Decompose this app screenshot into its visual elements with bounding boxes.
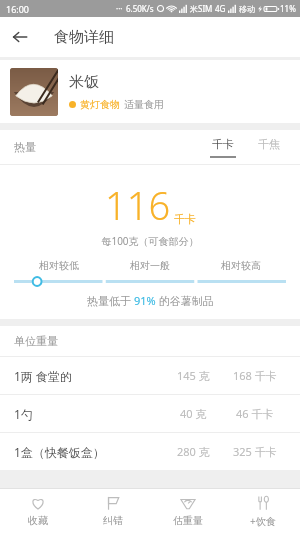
staticText: 食物详细: [54, 28, 114, 47]
staticText: 1勺: [14, 406, 162, 422]
staticText: 热量: [14, 140, 36, 154]
button[interactable]: 收藏: [0, 489, 75, 533]
button[interactable]: 1盒（快餐饭盒）: [0, 433, 300, 470]
staticText: 千卡: [212, 137, 234, 151]
staticText: 4G: [215, 3, 226, 14]
button[interactable]: 估重量: [150, 489, 225, 533]
button[interactable]: 千卡: [206, 137, 240, 158]
staticText: 单位重量: [14, 334, 58, 348]
staticText: 6.50K/s: [126, 3, 154, 14]
staticText: 相对一般: [130, 259, 170, 272]
button[interactable]: +饮食: [225, 489, 300, 533]
staticText: 相对较低: [39, 259, 79, 272]
button[interactable]: 千焦: [252, 137, 286, 158]
staticText: 米饭: [69, 73, 99, 92]
staticText: 91%: [134, 293, 156, 308]
button[interactable]: 返回: [8, 25, 32, 49]
staticText: 纠错: [103, 514, 123, 527]
button[interactable]: 1勺: [0, 395, 300, 432]
staticText: 145 克: [177, 368, 210, 383]
staticText: 黄灯食物: [80, 98, 120, 111]
staticText: 移动: [239, 4, 255, 14]
staticText: 的谷薯制品: [156, 293, 214, 308]
staticText: 40 克: [180, 406, 207, 421]
staticText: 适量食用: [124, 98, 164, 111]
button[interactable]: 1两 食堂的: [0, 357, 300, 394]
staticText: 46 千卡: [236, 406, 274, 421]
staticText: 每100克（可食部分）: [0, 234, 300, 248]
staticText: 热量低于: [87, 293, 134, 308]
staticText: 1盒（快餐饭盒）: [14, 444, 162, 460]
staticText: +饮食: [250, 514, 276, 528]
staticText: 千卡: [174, 212, 196, 226]
staticText: 米SIM: [190, 3, 213, 14]
staticText: 11%: [280, 3, 296, 14]
staticText: 116: [105, 179, 171, 231]
staticText: 16:00: [6, 3, 30, 15]
staticText: 280 克: [177, 444, 210, 459]
staticText: 325 千卡: [233, 444, 277, 459]
staticText: 相对较高: [221, 259, 261, 272]
staticText: 168 千卡: [233, 368, 277, 383]
staticText: 估重量: [173, 514, 203, 527]
staticText: 收藏: [28, 514, 48, 527]
button[interactable]: 纠错: [75, 489, 150, 533]
staticText: ···: [116, 3, 123, 14]
staticText: 1两 食堂的: [14, 368, 162, 384]
staticText: 千焦: [258, 137, 280, 151]
